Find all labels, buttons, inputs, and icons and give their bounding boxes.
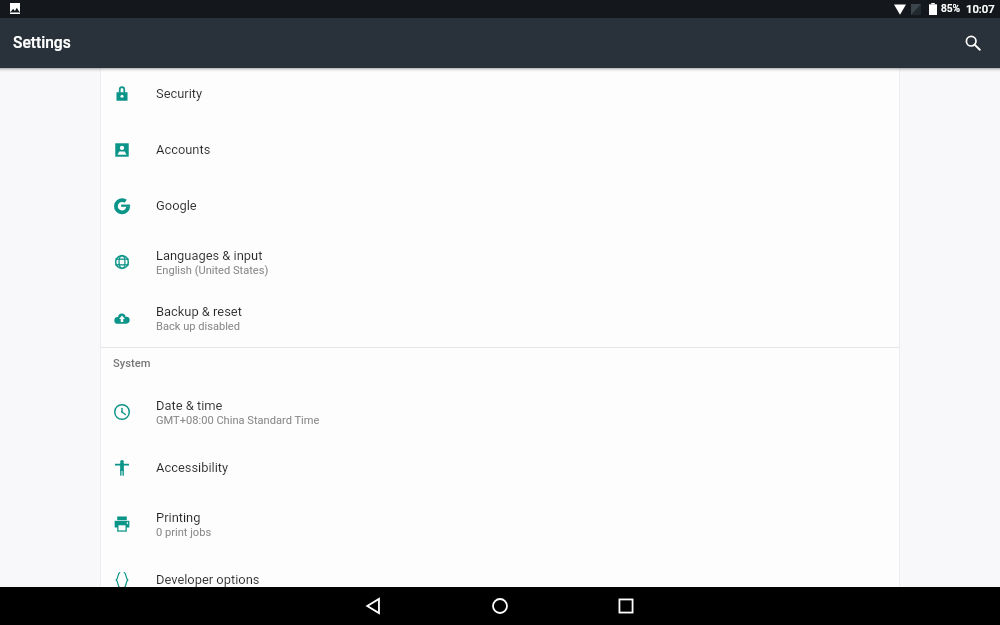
staticText: Google: [156, 198, 197, 213]
button[interactable]: Languages & input: [100, 234, 900, 290]
staticText: Security: [156, 86, 203, 101]
staticText: Accessibility: [156, 460, 229, 475]
button[interactable]: Accessibility: [100, 440, 900, 496]
staticText: English (United States): [156, 264, 269, 277]
staticText: 85%: [941, 3, 961, 15]
button[interactable]: Date & time: [100, 384, 900, 440]
button[interactable]: Printing: [100, 496, 900, 552]
button[interactable]: Back: [311, 587, 437, 625]
staticText: Backup & reset: [156, 304, 242, 319]
staticText: Date & time: [156, 398, 223, 413]
button[interactable]: Security: [100, 68, 900, 122]
staticText: 0 print jobs: [156, 526, 212, 539]
button[interactable]: Accounts: [100, 122, 900, 178]
staticText: Settings: [13, 34, 71, 52]
staticText: System: [113, 357, 151, 370]
button[interactable]: Backup & reset: [100, 290, 900, 346]
button[interactable]: Home: [437, 587, 563, 625]
staticText: Back up disabled: [156, 320, 241, 333]
staticText: 10:07: [966, 3, 995, 16]
button[interactable]: Recent apps: [563, 587, 689, 625]
staticText: GMT+08:00 China Standard Time: [156, 414, 320, 427]
staticText: Printing: [156, 510, 201, 525]
button[interactable]: Developer options: [100, 552, 900, 587]
staticText: Developer options: [156, 572, 260, 587]
staticText: Languages & input: [156, 248, 263, 263]
staticText: Accounts: [156, 142, 211, 157]
button[interactable]: Search: [955, 25, 991, 61]
button[interactable]: Google: [100, 178, 900, 234]
